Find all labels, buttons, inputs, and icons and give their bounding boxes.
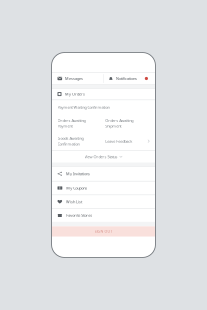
button[interactable]: Orders Awaiting (99, 114, 155, 132)
staticText: Messages (65, 76, 83, 81)
staticText: Notifications (116, 76, 137, 81)
button[interactable]: Notifications (104, 73, 156, 84)
button[interactable]: SIGN OUT (51, 226, 155, 236)
staticText: Orders Awaiting (105, 118, 133, 123)
button[interactable]: My Coupons (51, 181, 155, 194)
staticText: Favorite Stores (66, 213, 92, 218)
button[interactable]: Goods Awaiting (51, 132, 99, 150)
button[interactable]: Wish List (51, 195, 155, 208)
staticText: Orders Awaiting (57, 118, 85, 123)
button[interactable]: Favorite Stores (51, 209, 155, 222)
button[interactable]: Orders Awaiting (51, 114, 99, 132)
button[interactable]: Messages (51, 73, 103, 84)
button[interactable]: My Invitations (51, 167, 155, 181)
staticText: Goods Awaiting (57, 136, 83, 141)
staticText: My Invitations (66, 171, 90, 176)
staticText: My Coupons (66, 185, 87, 191)
staticText: Payment (57, 123, 72, 129)
staticText: Leave Feedback (105, 138, 132, 144)
staticText: Payment Waiting Confirmation (57, 105, 109, 110)
staticText: Shipment (105, 123, 121, 129)
staticText: SIGN OUT (94, 229, 112, 234)
staticText: Wish List (66, 199, 82, 204)
button[interactable]: Leave Feedback (99, 132, 155, 150)
staticText: View Orders Status (85, 154, 118, 159)
staticText: My Orders (65, 91, 85, 97)
button[interactable]: View Orders Status (51, 151, 155, 162)
staticText: Confirmation (57, 141, 79, 147)
